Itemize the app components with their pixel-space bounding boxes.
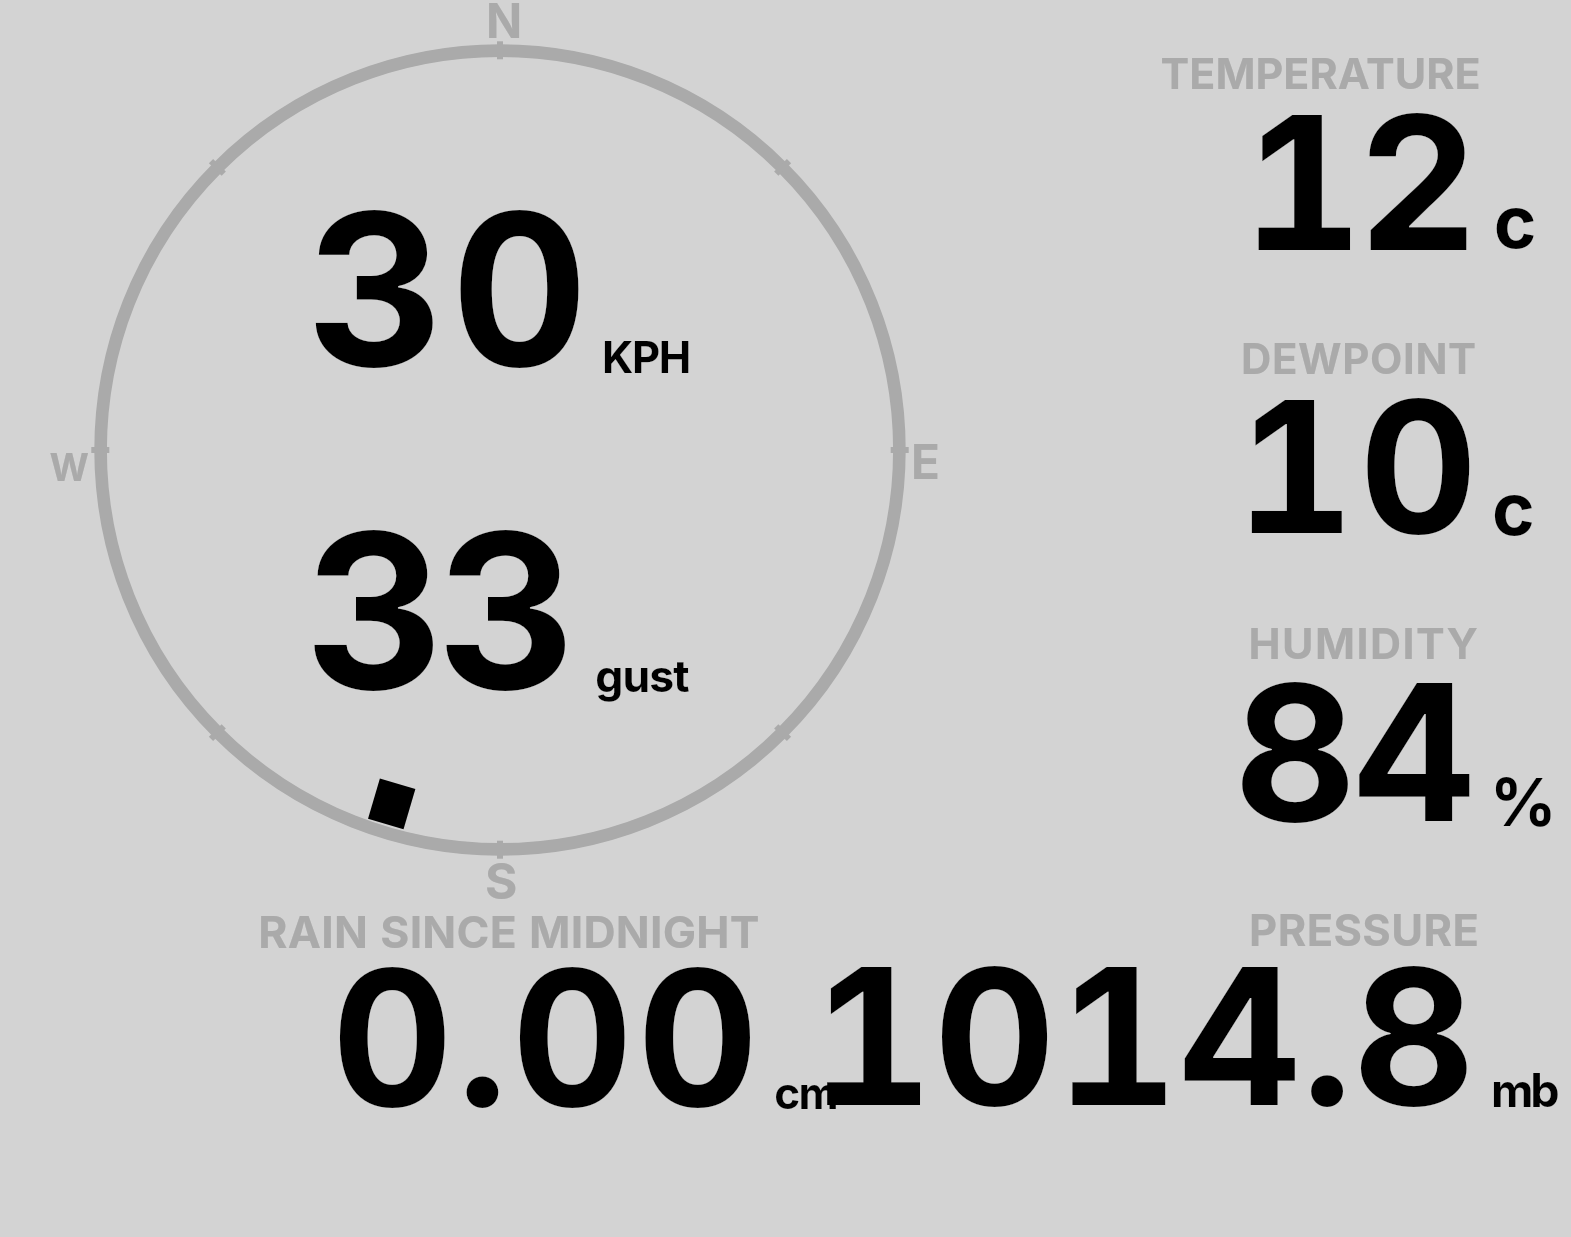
button[interactable]: Weather station dashboard: [0, 0, 1571, 1237]
